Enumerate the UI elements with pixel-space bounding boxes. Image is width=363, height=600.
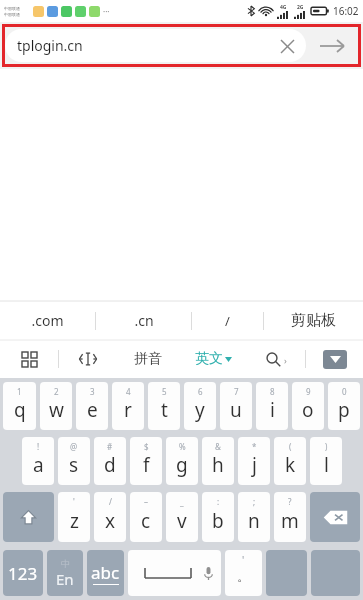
button[interactable]: 剪贴板 — [264, 301, 363, 340]
button[interactable]: Shift — [3, 492, 54, 542]
button[interactable]: Search — [248, 340, 305, 378]
staticText: .com — [31, 311, 64, 330]
staticText: 3 — [90, 386, 95, 397]
button[interactable]: ( — [274, 437, 306, 485]
staticText: a — [33, 452, 44, 478]
button[interactable]: Hide keyboard — [306, 340, 363, 378]
staticText: – — [144, 496, 148, 507]
button[interactable]: abc — [87, 550, 124, 596]
staticText: 16:02 — [333, 4, 359, 18]
staticText: ··· — [103, 6, 110, 17]
staticText: ! — [37, 441, 40, 452]
staticText: % — [179, 441, 186, 452]
button[interactable]: 1 — [3, 382, 36, 430]
button[interactable]: Move cursor — [59, 340, 116, 378]
button[interactable]: _ — [166, 492, 198, 542]
button[interactable]: 拼音 — [116, 340, 179, 378]
button[interactable]: 3 — [76, 382, 108, 430]
button[interactable]: 7 — [220, 382, 252, 430]
button[interactable]: ' — [58, 492, 90, 542]
staticText: _ — [180, 496, 184, 507]
staticText: 4 — [126, 386, 131, 397]
button[interactable]: 123 — [3, 550, 43, 596]
button[interactable]: .cn — [96, 301, 191, 340]
button[interactable]: / — [192, 301, 263, 340]
staticText: b — [212, 508, 224, 534]
staticText: 0 — [342, 386, 347, 397]
staticText: 8 — [270, 386, 275, 397]
button[interactable]: ) — [310, 437, 342, 485]
button[interactable]: Space — [128, 550, 221, 596]
staticText: 7 — [234, 386, 239, 397]
button[interactable]: 6 — [184, 382, 216, 430]
staticText: ? — [288, 496, 292, 507]
staticText: o — [302, 397, 314, 423]
button[interactable]: $ — [130, 437, 162, 485]
staticText: z — [70, 508, 79, 534]
button[interactable]: tplogin.cn — [5, 29, 306, 62]
staticText: ) — [325, 441, 328, 452]
staticText: 剪贴板 — [291, 311, 336, 330]
staticText: 拼音 — [134, 350, 162, 368]
staticText: h — [212, 452, 224, 478]
staticText: q — [14, 397, 26, 423]
staticText: 6 — [198, 386, 203, 397]
staticText: / — [109, 496, 112, 507]
staticText: c — [141, 508, 151, 534]
staticText: p — [338, 397, 350, 423]
staticText: f — [143, 452, 150, 478]
button[interactable]: Clear — [272, 31, 302, 61]
staticText: .cn — [134, 311, 154, 330]
staticText: › — [284, 354, 287, 366]
staticText: s — [69, 452, 79, 478]
button[interactable]: Backspace — [310, 492, 360, 542]
staticText: v — [177, 508, 187, 534]
staticText: # — [107, 441, 113, 452]
button[interactable]: ! — [22, 437, 54, 485]
staticText: j — [252, 452, 257, 478]
button[interactable] — [266, 550, 307, 596]
button[interactable]: ; — [238, 492, 270, 542]
staticText: r — [124, 397, 132, 423]
button[interactable]: & — [202, 437, 234, 485]
staticText: 1 — [17, 386, 22, 397]
button[interactable]: % — [166, 437, 198, 485]
staticText: d — [104, 452, 116, 478]
button[interactable]: 5 — [148, 382, 180, 430]
staticText: 4G — [280, 4, 287, 11]
staticText: : — [217, 496, 220, 507]
staticText: 英文 — [195, 350, 223, 368]
staticText: @ — [70, 441, 78, 452]
button[interactable]: * — [238, 437, 270, 485]
staticText: abc — [91, 561, 120, 584]
staticText: 9 — [306, 386, 311, 397]
button[interactable]: 9 — [292, 382, 324, 430]
button[interactable]: 4 — [112, 382, 144, 430]
staticText: 中 — [61, 558, 70, 569]
button[interactable]: Keyboard layouts — [0, 340, 58, 378]
staticText: * — [252, 441, 257, 452]
staticText: w — [49, 397, 64, 423]
button[interactable]: – — [130, 492, 162, 542]
staticText: & — [215, 441, 221, 452]
staticText: g — [176, 452, 188, 478]
button[interactable]: 英文 — [179, 340, 248, 378]
button[interactable]: 2 — [40, 382, 72, 430]
staticText: / — [225, 312, 230, 330]
button[interactable] — [311, 550, 360, 596]
staticText: 。 — [237, 568, 250, 584]
button[interactable]: .com — [0, 301, 95, 340]
button[interactable]: Go — [306, 27, 358, 64]
staticText: x — [105, 508, 116, 534]
button[interactable]: ? — [274, 492, 306, 542]
staticText: t — [161, 397, 168, 423]
staticText: $ — [144, 441, 149, 452]
button[interactable]: Punctuation — [225, 550, 262, 596]
button[interactable]: @ — [58, 437, 90, 485]
button[interactable]: 中 — [47, 550, 83, 596]
button[interactable]: 8 — [256, 382, 288, 430]
button[interactable]: : — [202, 492, 234, 542]
button[interactable]: 0 — [328, 382, 360, 430]
button[interactable]: / — [94, 492, 126, 542]
button[interactable]: # — [94, 437, 126, 485]
